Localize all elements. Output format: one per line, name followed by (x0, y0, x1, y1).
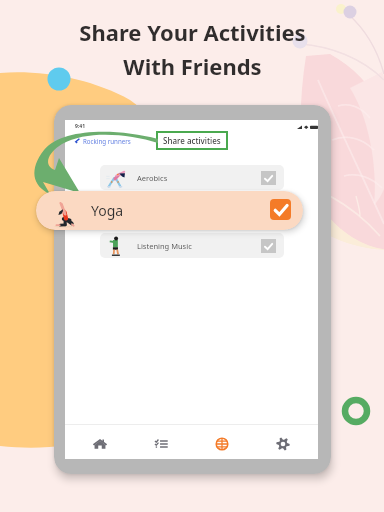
staticText: Aerobics (137, 173, 168, 183)
button[interactable]: Share activities (156, 131, 228, 150)
button[interactable]: Explore (191, 427, 252, 461)
button[interactable]: Aerobics (100, 165, 284, 190)
staticText: Share Your Activities (79, 17, 306, 47)
button[interactable]: Home (70, 427, 130, 461)
button[interactable]: Activities list (130, 427, 191, 461)
button[interactable]: Rocking runners (73, 137, 131, 145)
staticText: Yoga (91, 201, 124, 220)
staticText: 9:41 (75, 123, 85, 130)
staticText: Listening Music (137, 241, 192, 251)
button[interactable]: Listening Music (100, 233, 284, 258)
button[interactable]: Settings (252, 427, 313, 461)
staticText: Rocking runners (83, 137, 131, 145)
staticText: With Friends (123, 51, 262, 81)
staticText: Share activities (163, 135, 221, 146)
button[interactable]: Yoga (36, 191, 303, 230)
